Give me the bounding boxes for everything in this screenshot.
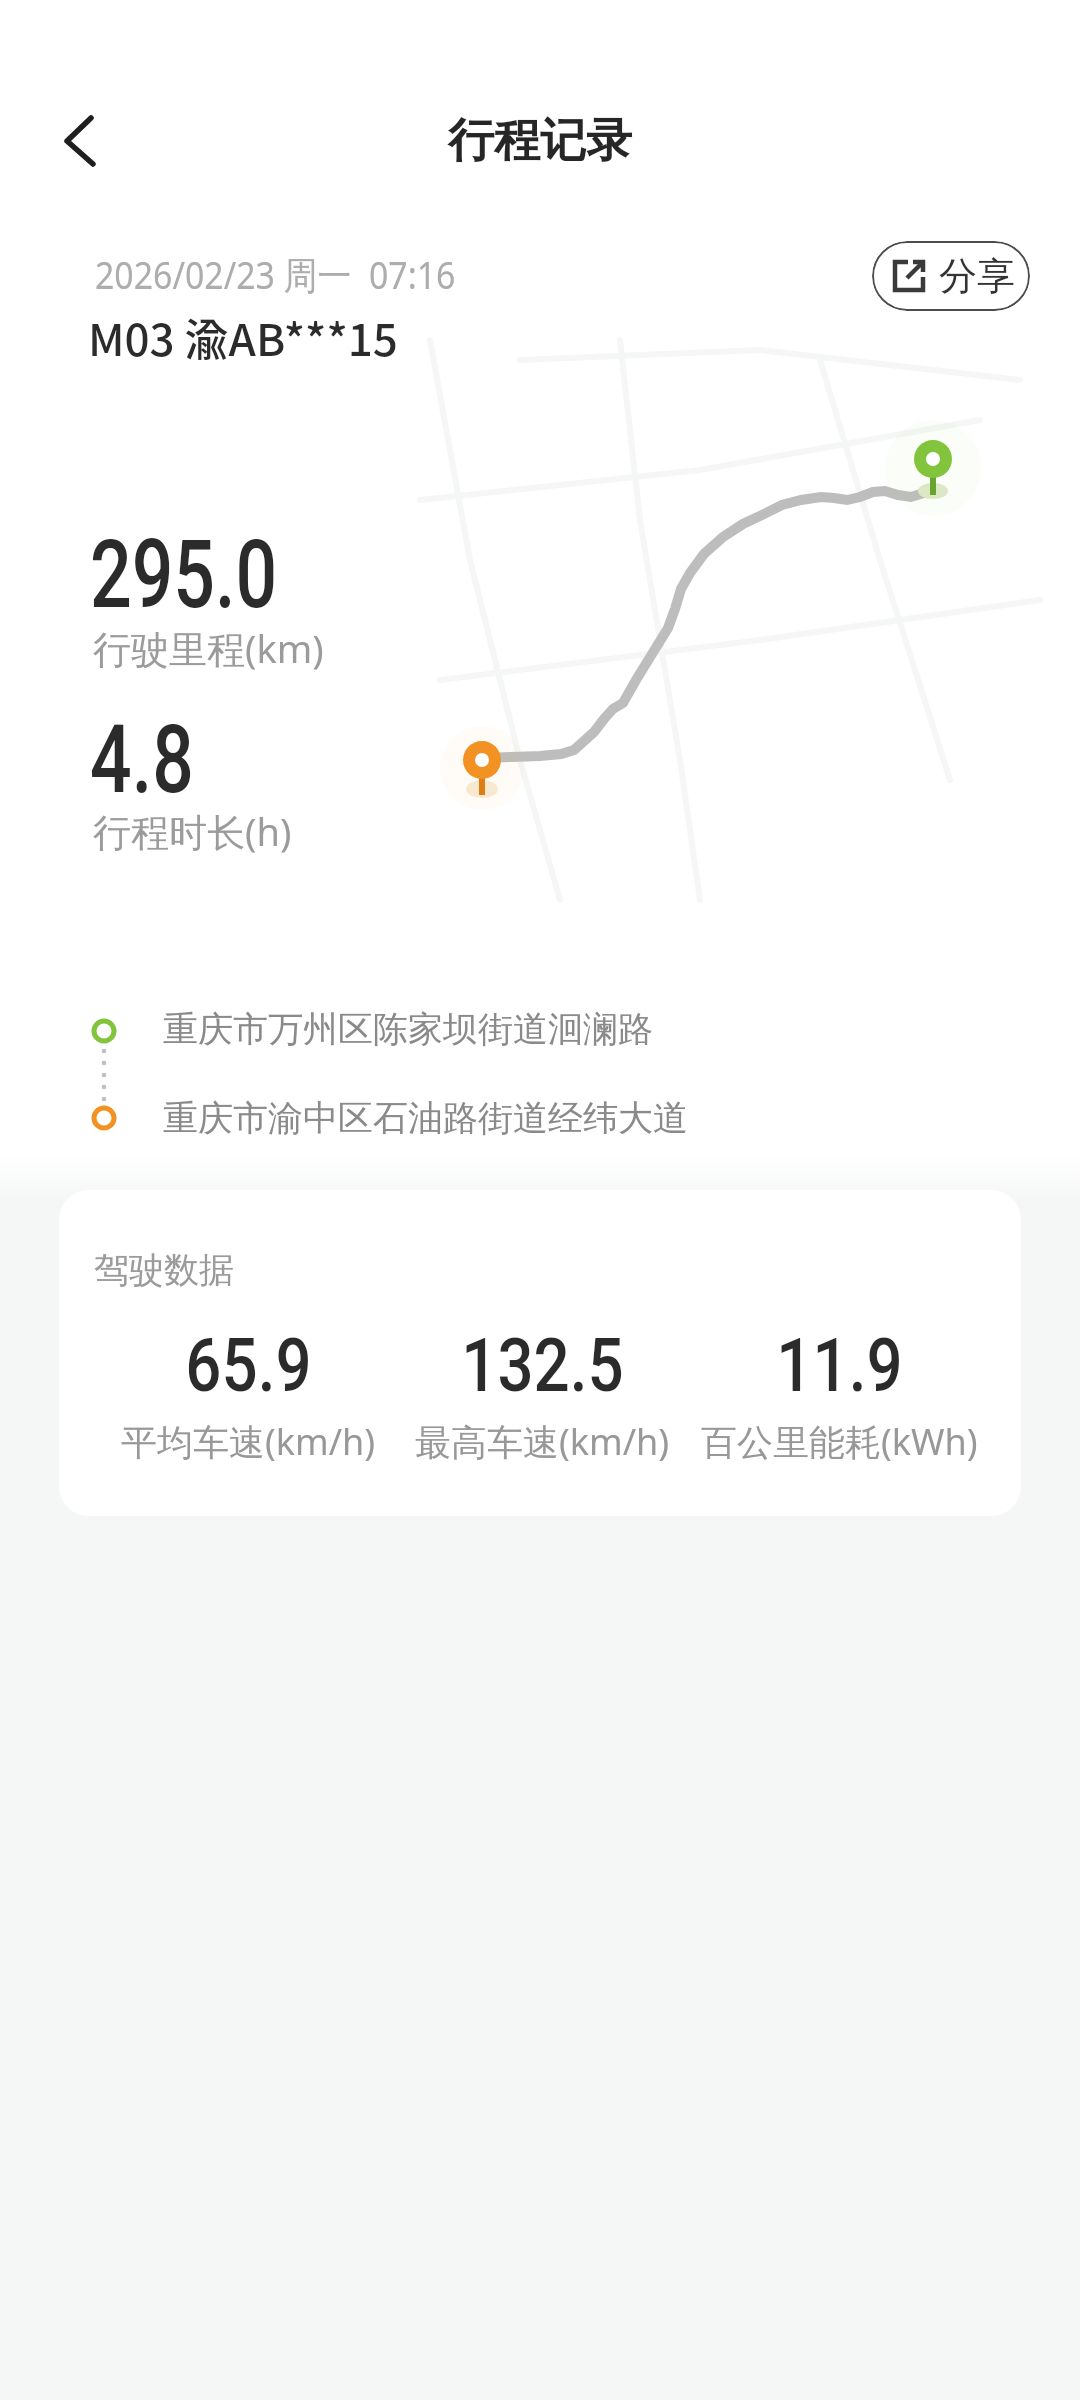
staticText: 行程时长(h) [93, 805, 292, 857]
button[interactable] [40, 100, 120, 180]
staticText: 百公里能耗(kWh) [701, 1417, 978, 1466]
staticText: 65.9 [185, 1322, 312, 1409]
staticText: 11.9 [776, 1322, 903, 1409]
staticText: 295.0 [90, 520, 277, 630]
staticText: 132.5 [461, 1322, 624, 1409]
staticText: 分享 [939, 252, 1015, 300]
button[interactable]: 分享 [872, 241, 1030, 311]
staticText: 行程记录 [448, 112, 632, 170]
staticText: 重庆市渝中区石油路街道经纬大道 [163, 1096, 688, 1140]
staticText: 驾驶数据 [94, 1248, 234, 1292]
staticText: 平均车速(km/h) [121, 1417, 376, 1466]
button[interactable] [59, 1190, 1021, 1516]
staticText: 重庆市万州区陈家坝街道洄澜路 [163, 1007, 653, 1051]
staticText: 4.8 [90, 705, 194, 815]
staticText: 2026/02/23 周一 07:16 [95, 248, 455, 300]
staticText: 行驶里程(km) [93, 622, 324, 674]
staticText: 最高车速(km/h) [415, 1417, 670, 1466]
staticText: M03 渝AB***15 [88, 305, 398, 369]
